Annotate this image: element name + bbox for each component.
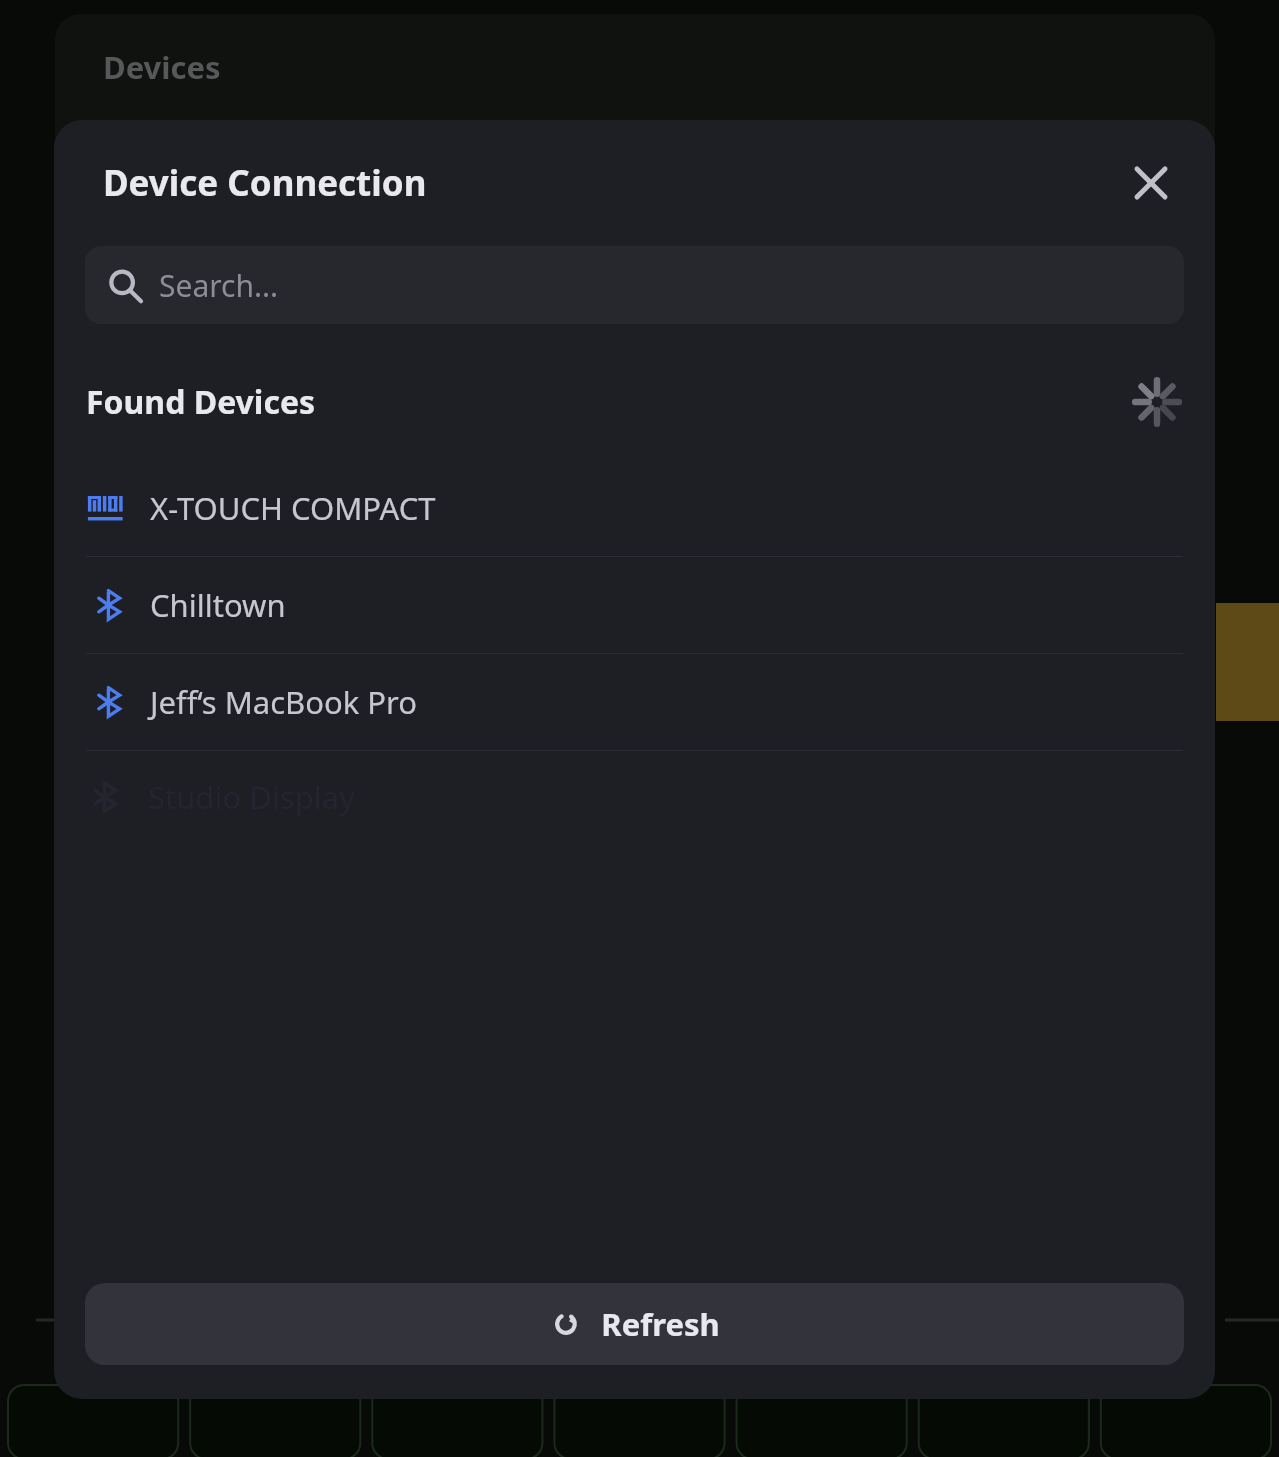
staticText: Studio Display (148, 776, 355, 818)
button[interactable]: Refresh (85, 1283, 1184, 1365)
staticText: Refresh (601, 1303, 720, 1345)
button[interactable]: Close (1119, 151, 1183, 215)
button[interactable]: Search... (85, 246, 1184, 324)
staticText: Chilltown (150, 584, 286, 626)
staticText: Found Devices (86, 380, 316, 424)
button[interactable]: X-TOUCH COMPACT (54, 460, 1215, 556)
staticText: X-TOUCH COMPACT (150, 487, 436, 529)
staticText: Search... (159, 265, 279, 306)
button[interactable]: Jeff‘s MacBook Pro (54, 654, 1215, 750)
staticText: Devices (103, 46, 221, 88)
staticText: Device Connection (103, 159, 427, 207)
button[interactable]: Chilltown (54, 557, 1215, 653)
staticText: Jeff‘s MacBook Pro (150, 681, 418, 723)
